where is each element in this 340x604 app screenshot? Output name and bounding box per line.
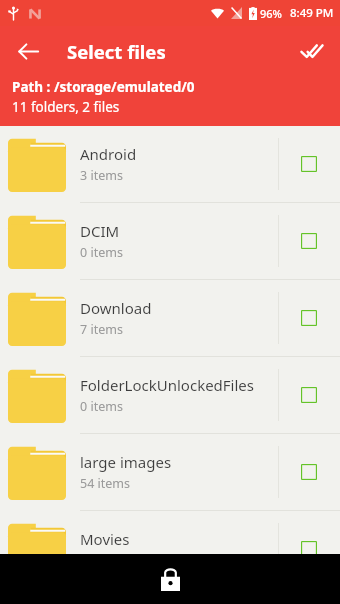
staticText: 8:49 PM xyxy=(290,5,334,21)
staticText: Movies xyxy=(80,529,130,549)
staticText: DCIM xyxy=(80,221,120,241)
button[interactable]: Select large images xyxy=(278,434,340,510)
button[interactable]: Android xyxy=(0,126,340,202)
button[interactable]: Back xyxy=(6,29,50,73)
staticText: 54 items xyxy=(80,475,131,492)
staticText: 0 items xyxy=(80,398,123,415)
button[interactable]: Select all xyxy=(290,29,334,73)
staticText: 7 items xyxy=(80,321,123,338)
button[interactable]: large images xyxy=(0,434,340,510)
staticText: Select files xyxy=(67,39,166,64)
button[interactable]: Movies xyxy=(0,511,340,587)
button[interactable]: Select DCIM xyxy=(278,203,340,279)
button[interactable]: Select Movies xyxy=(278,511,340,587)
button[interactable]: Select Android xyxy=(278,126,340,202)
staticText: 11 folders, 2 files xyxy=(12,98,120,116)
staticText: Android xyxy=(80,144,137,164)
staticText: Download xyxy=(80,298,152,318)
staticText: 1 items xyxy=(80,552,123,569)
button[interactable]: DCIM xyxy=(0,203,340,279)
button[interactable]: Download xyxy=(0,280,340,356)
button[interactable]: Lock xyxy=(150,559,190,599)
button[interactable]: Select FolderLockUnlockedFiles xyxy=(278,357,340,433)
staticText: Path : /storage/emulated/0 xyxy=(12,78,195,96)
staticText: FolderLockUnlockedFiles xyxy=(80,375,255,395)
staticText: large images xyxy=(80,452,172,472)
staticText: 3 items xyxy=(80,167,123,184)
staticText: 0 items xyxy=(80,244,123,261)
button[interactable]: FolderLockUnlockedFiles xyxy=(0,357,340,433)
button[interactable]: Select Download xyxy=(278,280,340,356)
staticText: 96% xyxy=(260,6,282,21)
